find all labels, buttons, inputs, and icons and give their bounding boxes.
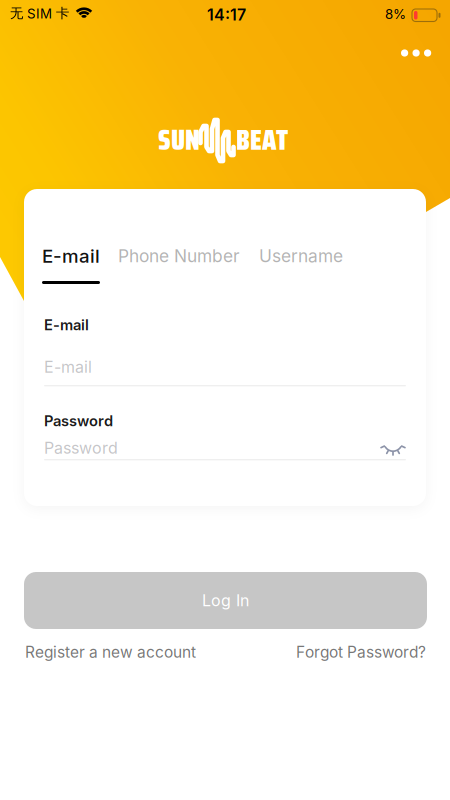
staticText: 无 SIM 卡 [10, 5, 69, 22]
staticText: BEAT [236, 118, 288, 162]
staticText: SUN [158, 118, 200, 162]
staticText: Password [44, 438, 118, 458]
staticText: Username [259, 245, 343, 266]
button[interactable]: Register a new account [25, 641, 225, 663]
staticText: 14:17 [207, 5, 246, 24]
button[interactable]: Forgot Password? [266, 641, 426, 663]
button[interactable]: E-mail [42, 242, 112, 270]
staticText: Register a new account [25, 643, 196, 661]
staticText: Log In [202, 591, 249, 610]
staticText: Phone Number [118, 245, 240, 266]
staticText: E-mail [44, 316, 89, 334]
staticText: Password [44, 412, 113, 430]
button[interactable]: Username [259, 242, 359, 270]
staticText: E-mail [42, 245, 100, 267]
staticText: 8% [385, 6, 406, 22]
button[interactable]: Phone Number [118, 242, 258, 270]
button[interactable]: Log In [24, 572, 427, 629]
button[interactable]: Show password [378, 434, 408, 460]
button[interactable]: More options [392, 36, 441, 70]
staticText: E-mail [44, 357, 92, 377]
staticText: Forgot Password? [296, 643, 426, 661]
